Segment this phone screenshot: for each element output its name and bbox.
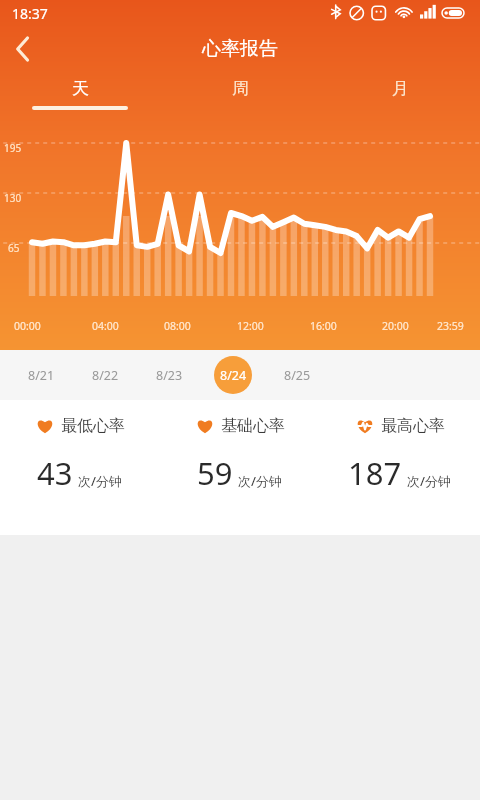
button[interactable]: Back — [0, 26, 46, 72]
staticText: 8/24 — [220, 367, 247, 384]
staticText: 次/分钟 — [78, 472, 123, 490]
button[interactable]: 天 — [0, 72, 160, 116]
staticText: 8/22 — [92, 367, 119, 384]
staticText: 8/21 — [28, 367, 55, 384]
staticText: 18:37 — [12, 4, 48, 23]
staticText: 23:59 — [437, 319, 464, 333]
button[interactable]: 最低心率 — [0, 400, 160, 535]
staticText: 16:00 — [310, 319, 337, 333]
button[interactable]: 8/21 — [22, 356, 60, 394]
staticText: 最高心率 — [381, 416, 445, 436]
staticText: 65 — [8, 241, 20, 255]
staticText: 08:00 — [164, 319, 191, 333]
staticText: 59 — [197, 452, 233, 494]
staticText: 8/25 — [284, 367, 311, 384]
staticText: 心率报告 — [202, 37, 278, 61]
button[interactable]: 月 — [320, 72, 480, 116]
staticText: 次/分钟 — [407, 472, 452, 490]
button[interactable]: 基础心率 — [160, 400, 320, 535]
staticText: 00:00 — [14, 319, 41, 333]
staticText: 20:00 — [382, 319, 409, 333]
button[interactable]: 最高心率 — [320, 400, 480, 535]
staticText: 187 — [348, 452, 402, 494]
button[interactable]: 8/22 — [86, 356, 124, 394]
staticText: 基础心率 — [221, 416, 285, 436]
staticText: 195 — [4, 141, 22, 155]
staticText: 最低心率 — [61, 416, 125, 436]
staticText: 04:00 — [92, 319, 119, 333]
button[interactable]: 8/25 — [278, 356, 316, 394]
staticText: 天 — [72, 78, 89, 99]
staticText: 月 — [392, 78, 409, 99]
staticText: 130 — [4, 191, 22, 205]
button[interactable]: 8/24 — [214, 356, 252, 394]
staticText: 12:00 — [237, 319, 264, 333]
staticText: 周 — [232, 78, 249, 99]
staticText: 43 — [37, 452, 73, 494]
button[interactable]: 周 — [160, 72, 320, 116]
staticText: 次/分钟 — [238, 472, 283, 490]
button[interactable]: 8/23 — [150, 356, 188, 394]
staticText: 8/23 — [156, 367, 183, 384]
